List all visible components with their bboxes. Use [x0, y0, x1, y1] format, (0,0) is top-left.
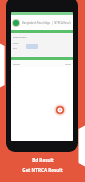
staticText: Bd Result	[32, 157, 54, 163]
staticText: Select Exam	[13, 35, 27, 38]
button[interactable]: Bangladesh Result App | NTRCA Result	[11, 15, 73, 30]
button[interactable]: Settings	[53, 103, 67, 117]
staticText: More	[65, 62, 71, 65]
staticText: Result	[13, 62, 20, 65]
staticText: Roll	[13, 47, 17, 50]
staticText: Bangladesh Result App | NTRCA Result	[22, 21, 71, 25]
staticText: Exam	[13, 42, 19, 45]
staticText: Get NTRCA Result	[22, 167, 63, 173]
